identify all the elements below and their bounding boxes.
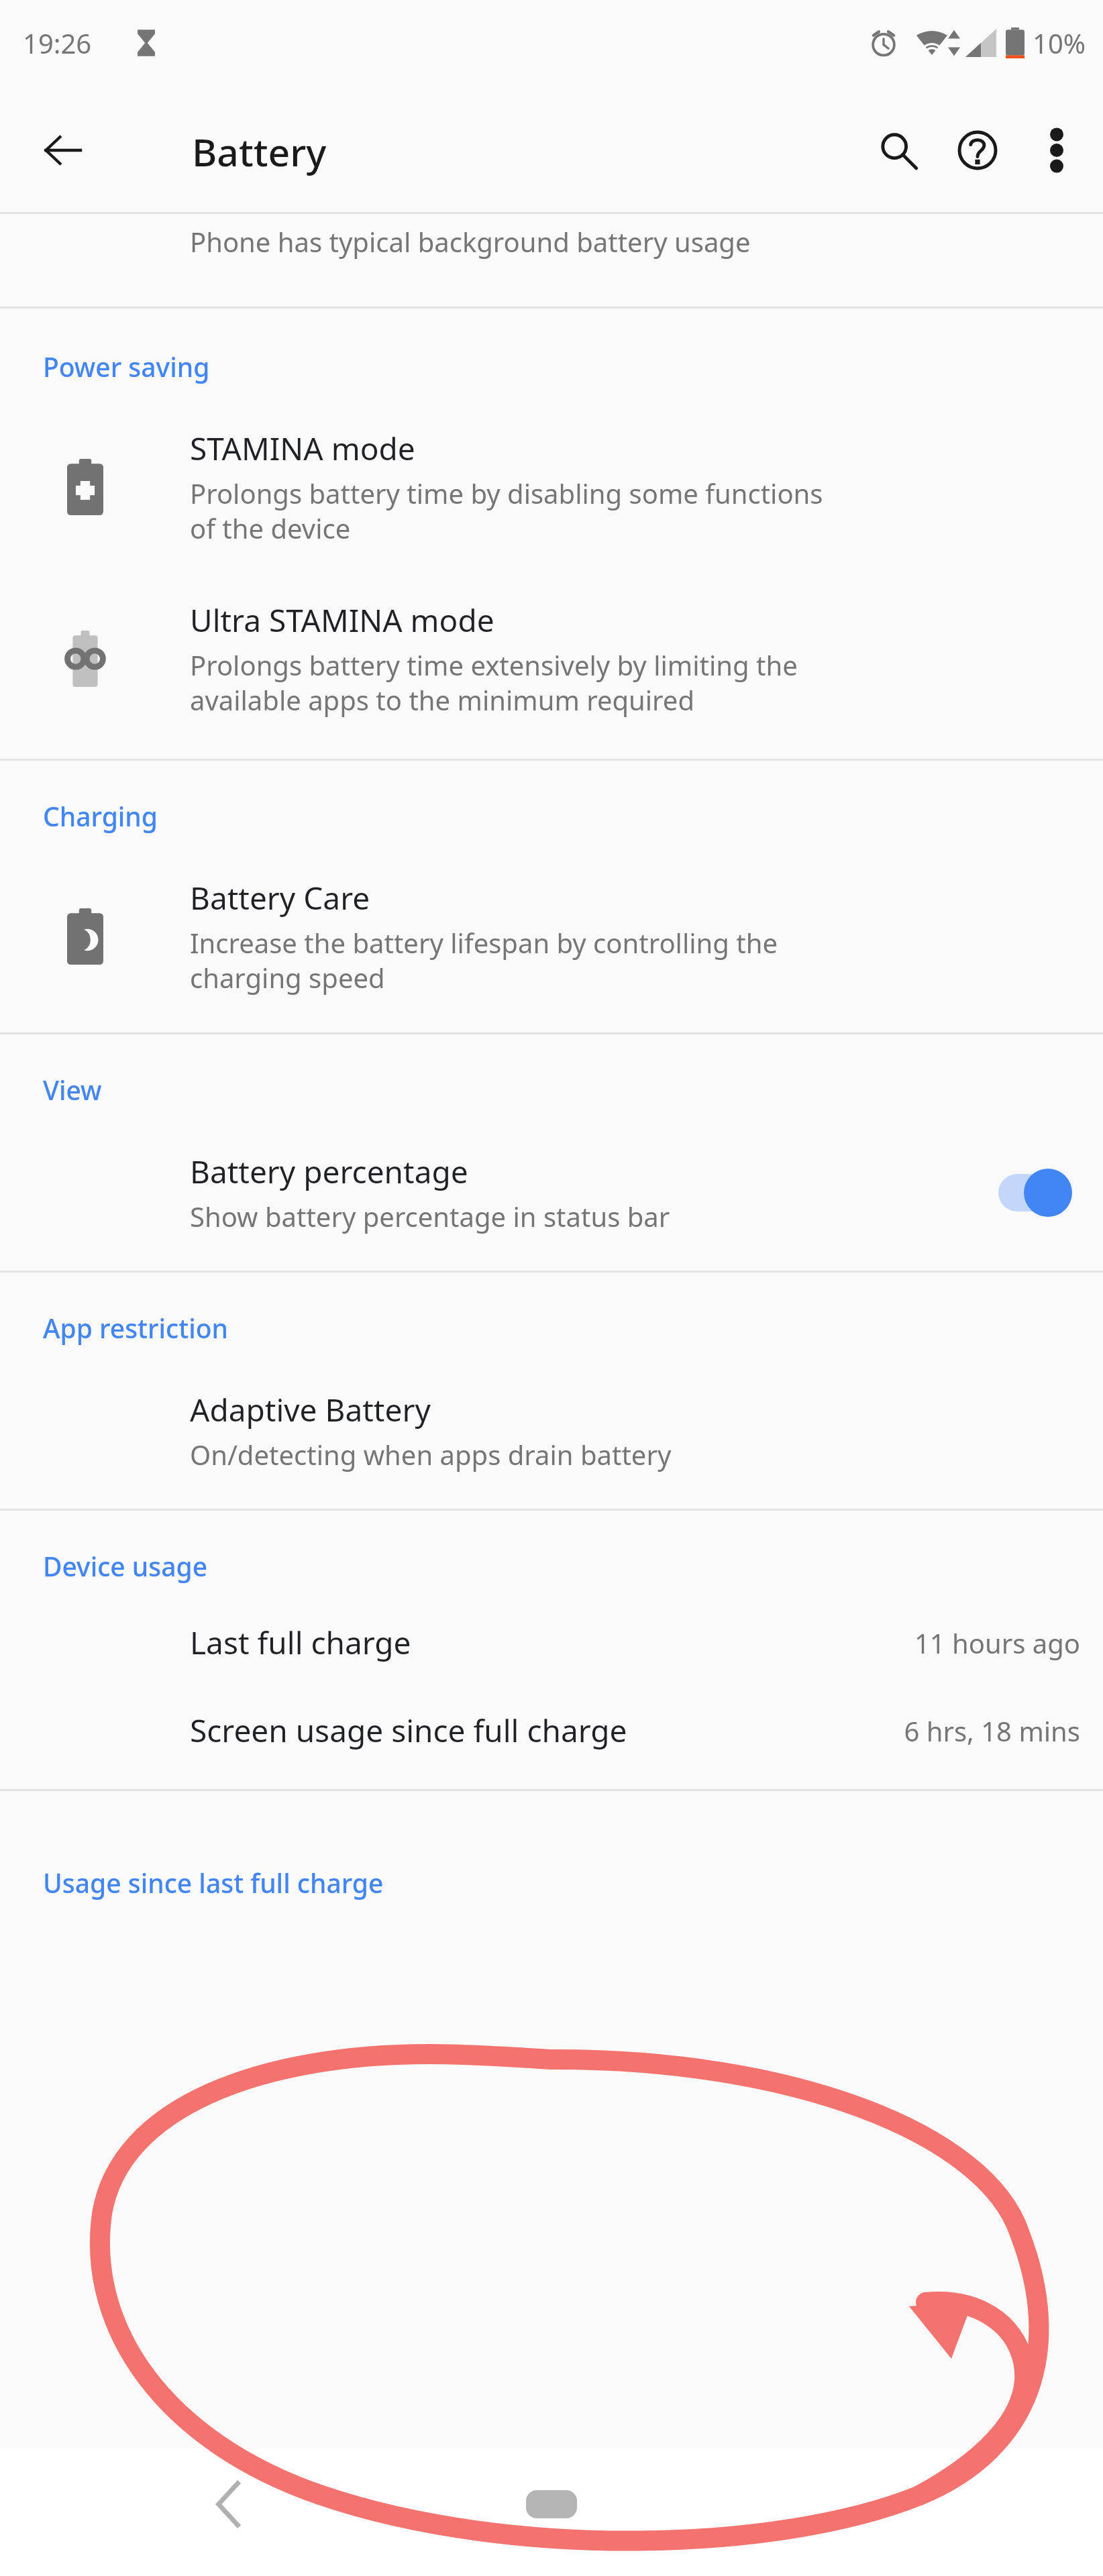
staticText: Device usage	[43, 1548, 208, 1584]
staticText: Prolongs battery time by disabling some …	[190, 475, 823, 547]
button[interactable]: Home	[505, 2476, 598, 2532]
button[interactable]: Back	[27, 114, 99, 186]
staticText: 6 hrs, 18 mins	[904, 1713, 1080, 1749]
staticText: Increase the battery lifespan by control…	[190, 924, 778, 996]
staticText: Prolongs battery time extensively by lim…	[190, 647, 798, 718]
staticText: Power saving	[43, 349, 210, 384]
button[interactable]: Back	[195, 2471, 262, 2538]
staticText: App restriction	[43, 1310, 228, 1346]
button[interactable]: Phone has typical background battery usa…	[0, 214, 1103, 307]
button[interactable]: Screen usage since full charge	[0, 1686, 1103, 1774]
staticText: STAMINA mode	[190, 427, 415, 470]
button[interactable]: More options	[1017, 111, 1096, 190]
staticText: Show battery percentage in status bar	[190, 1198, 670, 1234]
staticText: View	[43, 1072, 102, 1108]
staticText: 19:26	[23, 25, 92, 61]
button[interactable]: Ultra STAMINA mode	[0, 582, 1103, 736]
button[interactable]: Battery percentage toggle, on	[992, 1166, 1072, 1220]
staticText: Phone has typical background battery usa…	[190, 223, 751, 260]
button[interactable]: STAMINA mode	[0, 410, 1103, 564]
button[interactable]: Last full charge	[0, 1599, 1103, 1686]
staticText: Adaptive Battery	[190, 1389, 431, 1431]
staticText: Battery percentage	[190, 1150, 468, 1193]
button[interactable]: Help	[938, 111, 1017, 190]
staticText: On/detecting when apps drain battery	[190, 1436, 672, 1472]
staticText: Battery	[192, 125, 327, 178]
staticText: Screen usage since full charge	[190, 1709, 904, 1752]
staticText: 10%	[1033, 25, 1086, 61]
button[interactable]: Battery percentage	[0, 1133, 1103, 1252]
staticText: Battery Care	[190, 877, 370, 919]
staticText: Last full charge	[190, 1621, 914, 1664]
button[interactable]: Adaptive Battery	[0, 1371, 1103, 1490]
staticText: Usage since last full charge	[43, 1865, 384, 1900]
staticText: Ultra STAMINA mode	[190, 599, 494, 641]
button[interactable]: Search	[859, 111, 938, 190]
staticText: Charging	[43, 798, 158, 834]
staticText: 11 hours ago	[914, 1625, 1080, 1661]
button[interactable]: Battery Care	[0, 859, 1103, 1014]
